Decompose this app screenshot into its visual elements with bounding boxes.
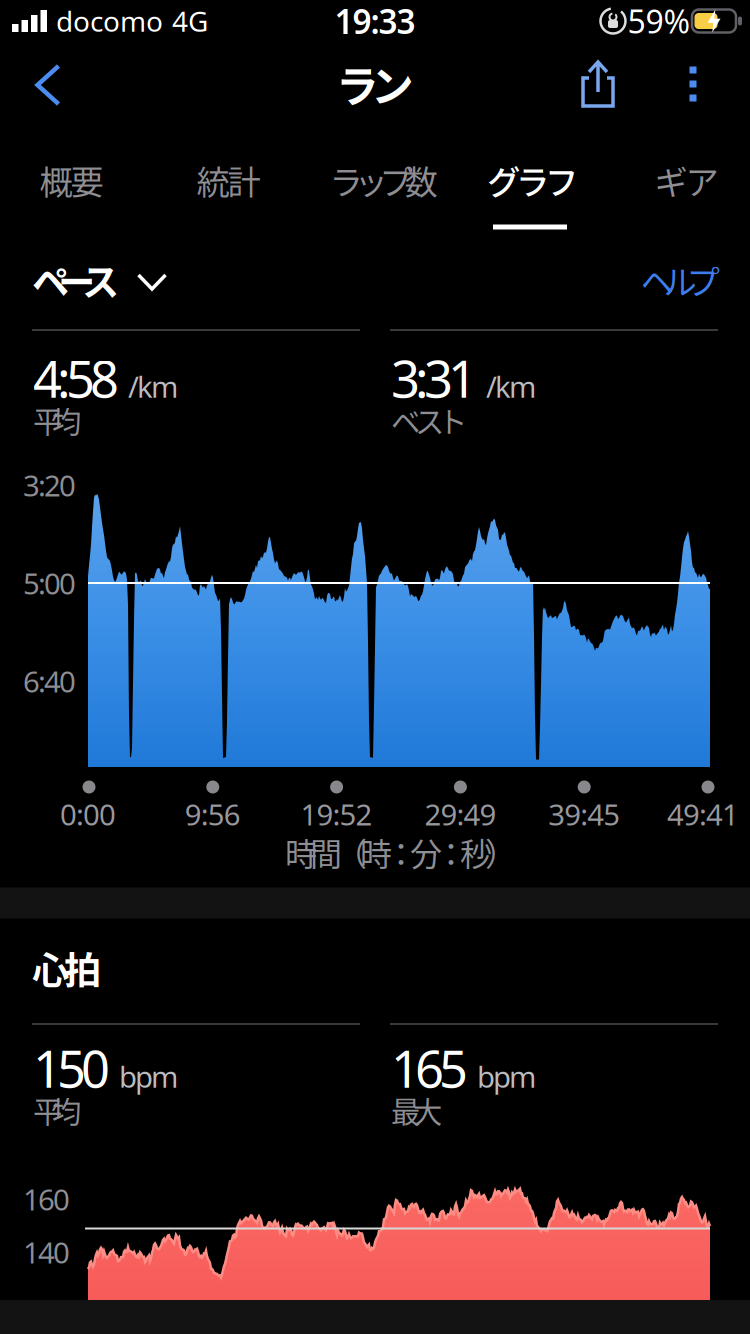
staticText: 3:31 [391, 344, 477, 412]
staticText: 4:58 [33, 344, 119, 412]
staticText: 平均 [33, 1089, 81, 1131]
staticText: 0:00 [60, 794, 116, 833]
staticText: 心拍 [32, 941, 101, 995]
staticText: 5:00 [23, 563, 76, 602]
staticText: 3:20 [23, 465, 76, 504]
staticText: ベスト [391, 399, 467, 441]
staticText: docomo [56, 2, 163, 40]
staticText: bpm [119, 1057, 178, 1096]
staticText: 19:33 [334, 0, 415, 43]
staticText: 39:45 [548, 794, 620, 833]
button[interactable]: 統計 [188, 148, 268, 212]
button[interactable]: 概要 [31, 148, 111, 212]
staticText: 4G [172, 2, 208, 40]
staticText: 9:56 [185, 794, 241, 833]
staticText: 165 [391, 1034, 468, 1102]
button[interactable]: ヘルプ [634, 250, 725, 310]
staticText: ラン [336, 53, 414, 115]
button[interactable]: ギア [646, 148, 726, 212]
staticText: 時間（時：分：秒） [285, 829, 517, 875]
staticText: 概要 [39, 156, 103, 204]
staticText: ギア [654, 156, 718, 204]
staticText: ラップ数 [329, 156, 437, 204]
staticText: /km [486, 367, 536, 406]
button[interactable]: ペース [32, 258, 172, 302]
staticText: 29:49 [424, 794, 496, 833]
button[interactable]: Back [25, 54, 70, 116]
staticText: 19:52 [301, 794, 373, 833]
staticText: 統計 [196, 156, 260, 204]
staticText: 平均 [33, 399, 81, 441]
staticText: /km [128, 367, 178, 406]
button[interactable]: ラップ数 [321, 148, 445, 212]
button[interactable]: More [679, 56, 706, 111]
button[interactable]: グラフ [479, 148, 586, 212]
staticText: 最大 [391, 1089, 442, 1131]
staticText: 59% [627, 0, 690, 42]
staticText: ペース [32, 253, 119, 307]
button[interactable]: Share [576, 59, 620, 109]
staticText: 49:41 [667, 794, 739, 833]
staticText: グラフ [487, 156, 578, 204]
staticText: 150 [33, 1034, 110, 1102]
staticText: ヘルプ [640, 256, 719, 304]
staticText: bpm [477, 1057, 536, 1096]
staticText: 140 [23, 1232, 70, 1271]
staticText: 6:40 [23, 661, 76, 700]
staticText: 160 [23, 1179, 70, 1218]
